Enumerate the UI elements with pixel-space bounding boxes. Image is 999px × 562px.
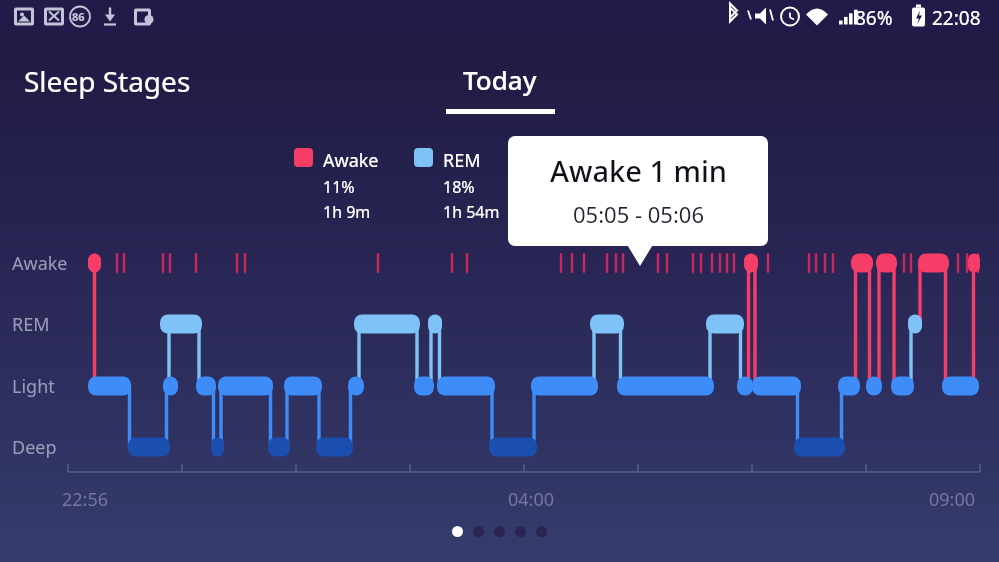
staticText: 09:00 [929,487,976,512]
staticText: Awake [12,251,68,276]
staticText: 86 [72,9,85,24]
staticText: 1h 9m [323,201,371,223]
button[interactable]: Awake [292,146,381,225]
staticText: 1h 54m [443,201,500,223]
staticText: 86% [855,5,893,31]
button[interactable]: Page 5 [536,526,547,537]
staticText: Light [12,374,55,399]
staticText: 18% [443,176,475,198]
button[interactable]: Page 4 [515,526,526,537]
staticText: Deep [12,435,57,460]
staticText: REM [12,312,50,337]
staticText: Sleep Stages [24,62,191,100]
staticText: Today [463,62,537,97]
staticText: REM [443,148,481,173]
button[interactable]: Page 1 [452,526,463,537]
button[interactable]: Today [420,62,580,114]
staticText: 22:08 [932,5,981,31]
staticText: 11% [323,176,355,198]
button[interactable]: REM [412,146,502,225]
staticText: Awake 1 min [550,151,727,190]
staticText: Awake [323,148,379,173]
button[interactable]: Page 3 [494,526,505,537]
button[interactable]: Page 2 [473,526,484,537]
staticText: 22:56 [62,487,109,512]
button[interactable]: Awake 1 min [508,136,768,246]
staticText: 04:00 [508,487,555,512]
staticText: 05:05 - 05:06 [573,199,704,229]
